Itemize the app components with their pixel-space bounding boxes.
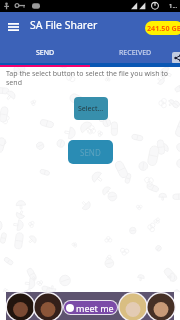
staticText: RECEIVED — [119, 48, 152, 58]
staticText: SA File Sharer — [30, 18, 98, 32]
staticText: 1... — [169, 2, 178, 10]
button[interactable]: SEND — [0, 42, 90, 63]
staticText: meet me — [76, 302, 114, 314]
button[interactable]: Select... — [74, 97, 108, 120]
staticText: SEND — [36, 48, 55, 58]
button[interactable]: Open navigation drawer — [0, 12, 27, 42]
staticText: 241.50 GB — [147, 23, 180, 33]
staticText: Select... — [78, 104, 104, 114]
button[interactable]: SEND — [68, 140, 113, 164]
button[interactable]: RECEIVED — [90, 42, 180, 63]
button[interactable]: Share — [172, 52, 180, 64]
button[interactable]: 241.50 GB — [145, 21, 180, 35]
staticText: SEND — [80, 147, 101, 158]
staticText: Tap the select button to select the file… — [6, 69, 172, 87]
button[interactable]: meet me advertisement — [6, 292, 174, 320]
